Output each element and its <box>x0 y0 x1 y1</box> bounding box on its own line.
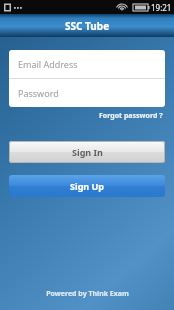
staticText: 19:21 <box>151 2 172 13</box>
staticText: Forgot password ? <box>99 111 163 121</box>
button[interactable]: Sign Up <box>9 175 165 197</box>
staticText: Password <box>18 87 59 99</box>
staticText: Email Address <box>18 58 78 70</box>
staticText: Sign In <box>72 146 103 158</box>
button[interactable]: Email Address <box>9 50 165 78</box>
button[interactable]: Sign In <box>9 141 165 163</box>
button[interactable]: Password <box>9 79 165 107</box>
staticText: Sign Up <box>70 180 105 192</box>
staticText: Powered by Think Exam <box>46 289 129 299</box>
button[interactable]: Forgot password ? <box>97 109 165 123</box>
staticText: SSC Tube <box>65 19 110 33</box>
